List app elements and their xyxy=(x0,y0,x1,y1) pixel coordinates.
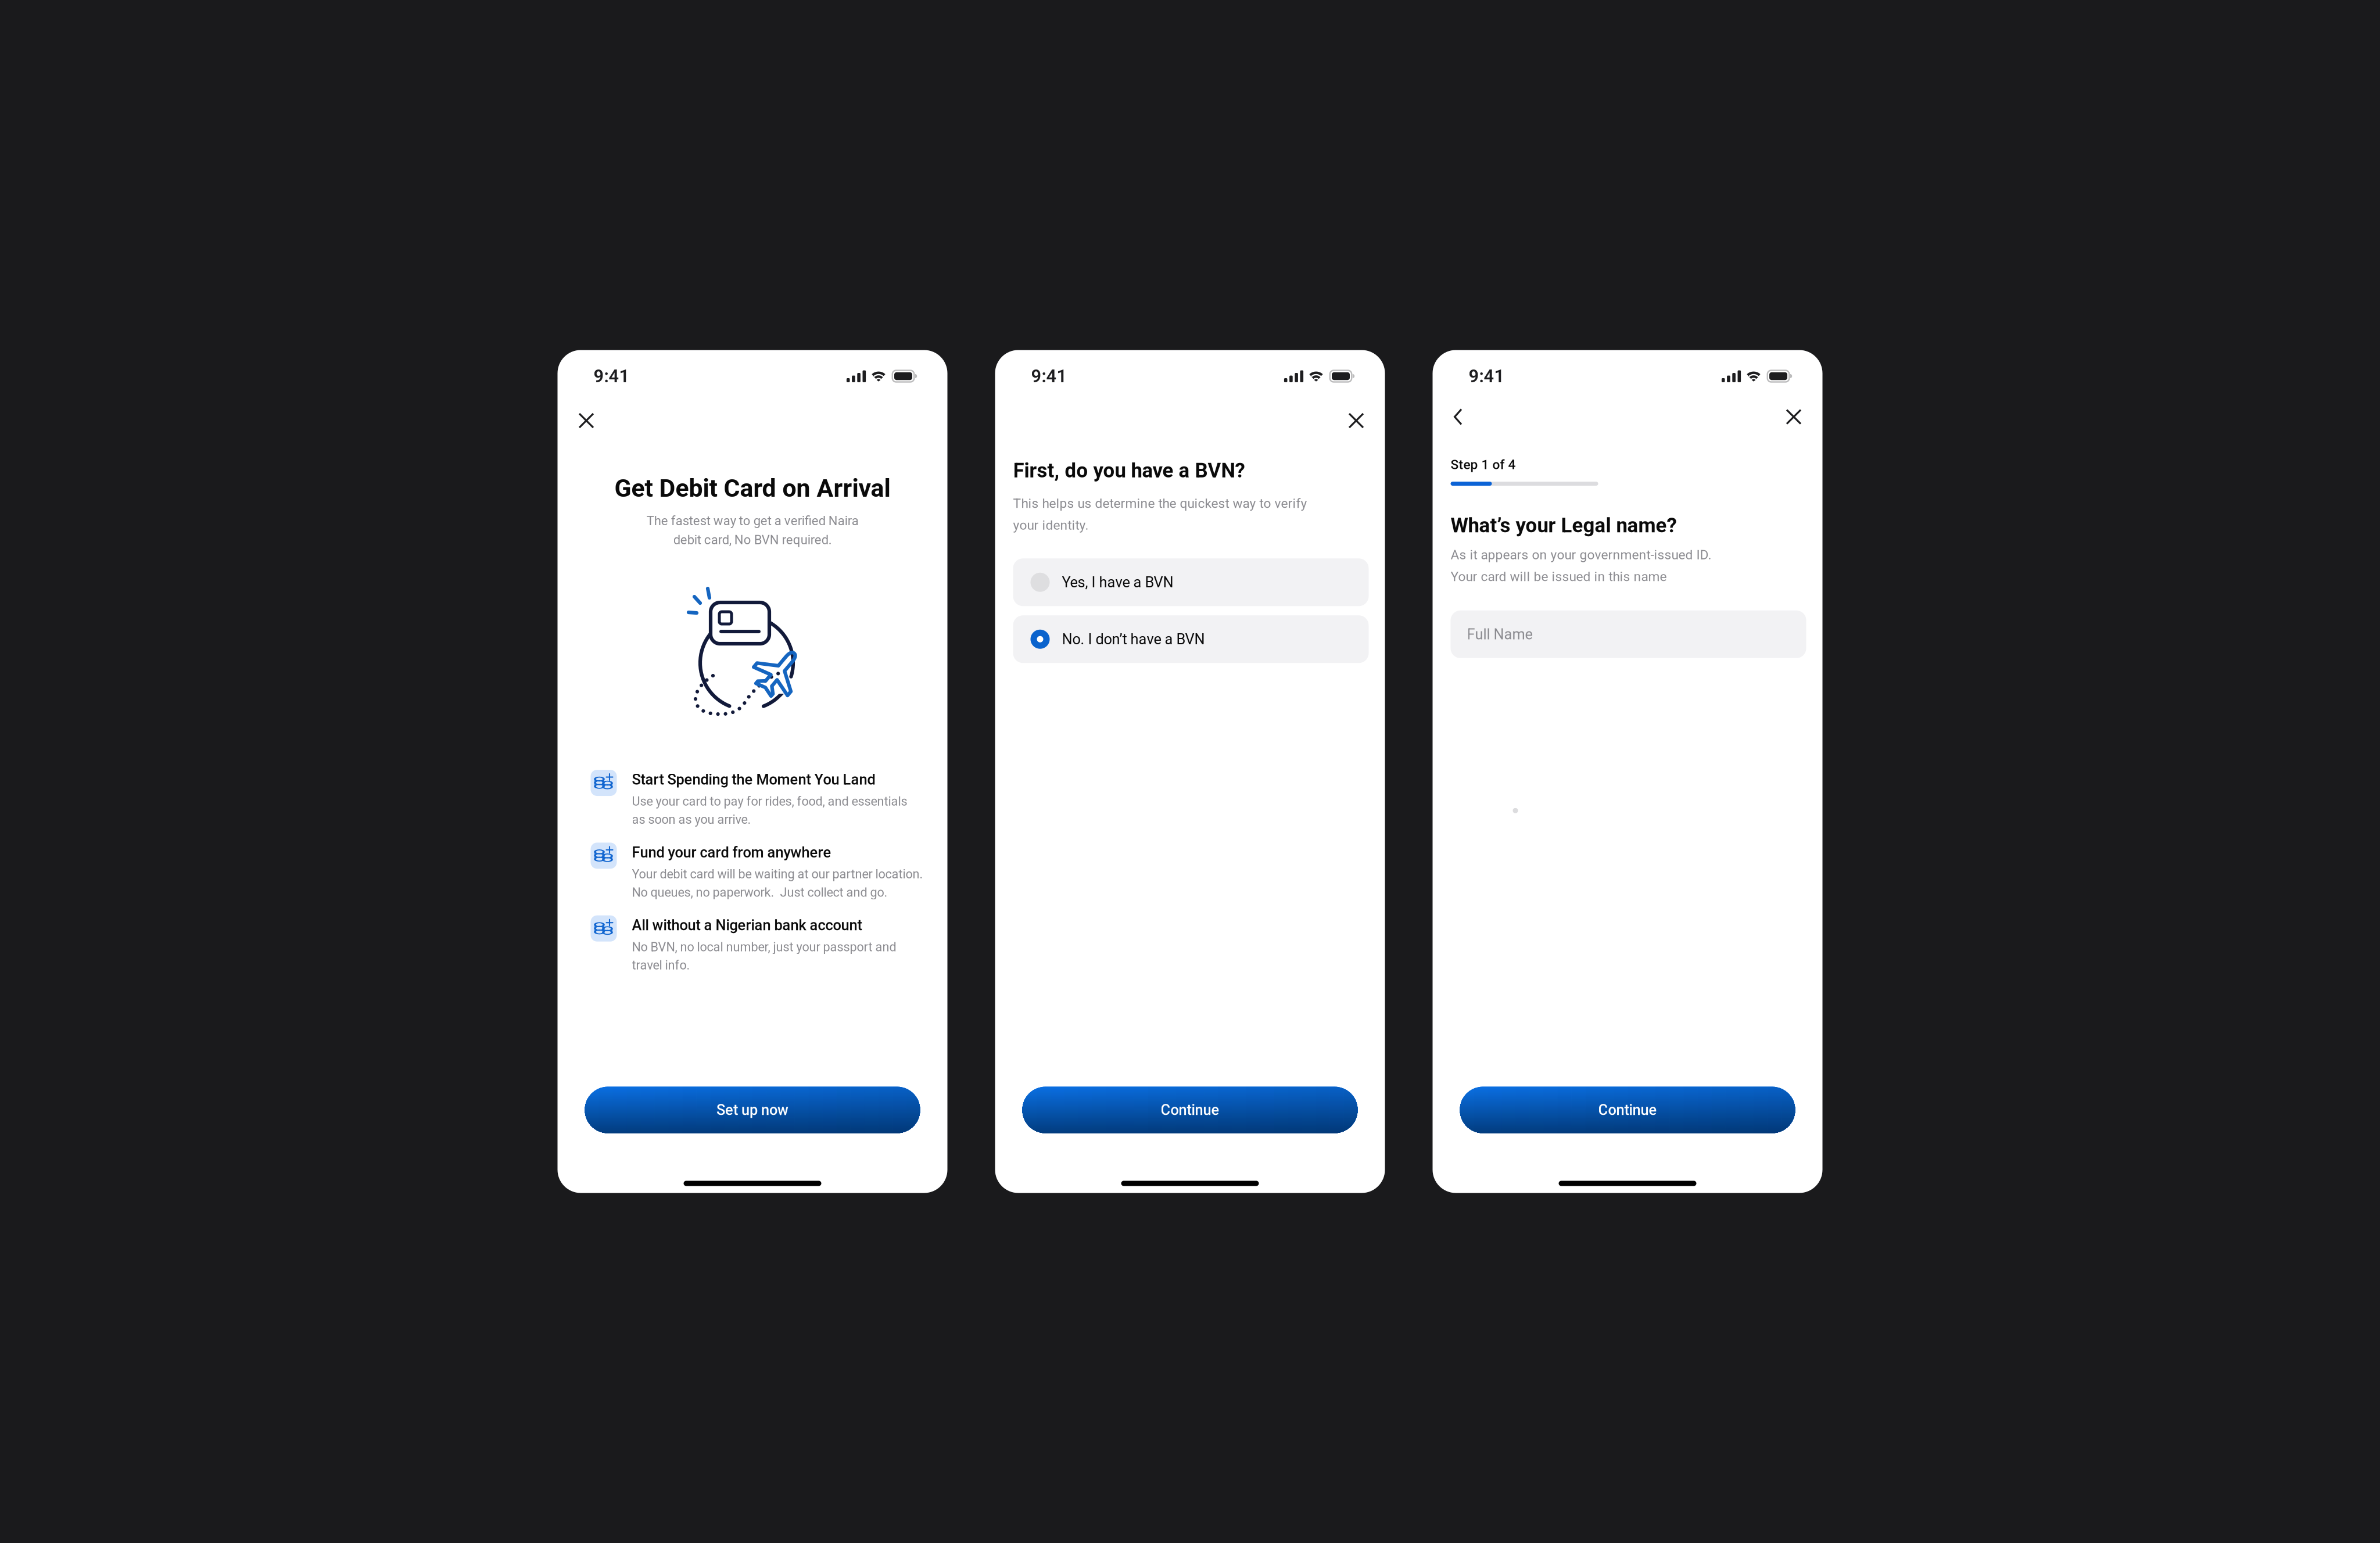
staticText: Start Spending the Moment You Land xyxy=(632,771,875,788)
button[interactable]: Close xyxy=(1782,406,1805,428)
staticText: Full Name xyxy=(1467,626,1533,643)
staticText: As it appears on your government-issued … xyxy=(1451,547,1711,584)
staticText: Use your card to pay for rides, food, an… xyxy=(632,794,907,827)
staticText: The fastest way to get a verified Naira … xyxy=(646,513,859,547)
staticText: Fund your card from anywhere xyxy=(632,844,831,861)
staticText: Your debit card will be waiting at our p… xyxy=(632,867,923,900)
button[interactable]: Back xyxy=(1450,405,1466,429)
staticText: Continue xyxy=(1161,1101,1219,1119)
staticText: 9:41 xyxy=(1469,366,1505,387)
staticText: 9:41 xyxy=(594,366,630,387)
staticText: Set up now xyxy=(716,1101,788,1119)
staticText: Continue xyxy=(1598,1101,1657,1119)
staticText: Step 1 of 4 xyxy=(1451,457,1516,472)
staticText: No. I don’t have a BVN xyxy=(1062,631,1205,648)
button[interactable]: Continue xyxy=(1460,1087,1795,1133)
button[interactable]: No. I don’t have a BVN xyxy=(1013,615,1369,663)
staticText: No BVN, no local number, just your passp… xyxy=(632,940,896,973)
staticText: Yes, I have a BVN xyxy=(1062,574,1173,591)
button[interactable]: Continue xyxy=(1022,1087,1358,1133)
staticText: 9:41 xyxy=(1031,366,1067,387)
staticText: First, do you have a BVN? xyxy=(1013,459,1245,482)
button[interactable]: Set up now xyxy=(585,1087,920,1133)
staticText: What’s your Legal name? xyxy=(1451,514,1677,537)
staticText: This helps us determine the quickest way… xyxy=(1013,496,1307,533)
staticText: Get Debit Card on Arrival xyxy=(614,474,890,503)
staticText: All without a Nigerian bank account xyxy=(632,917,862,934)
button[interactable]: Close xyxy=(575,409,598,432)
button[interactable]: Yes, I have a BVN xyxy=(1013,558,1369,606)
button[interactable]: Close xyxy=(1345,409,1368,432)
